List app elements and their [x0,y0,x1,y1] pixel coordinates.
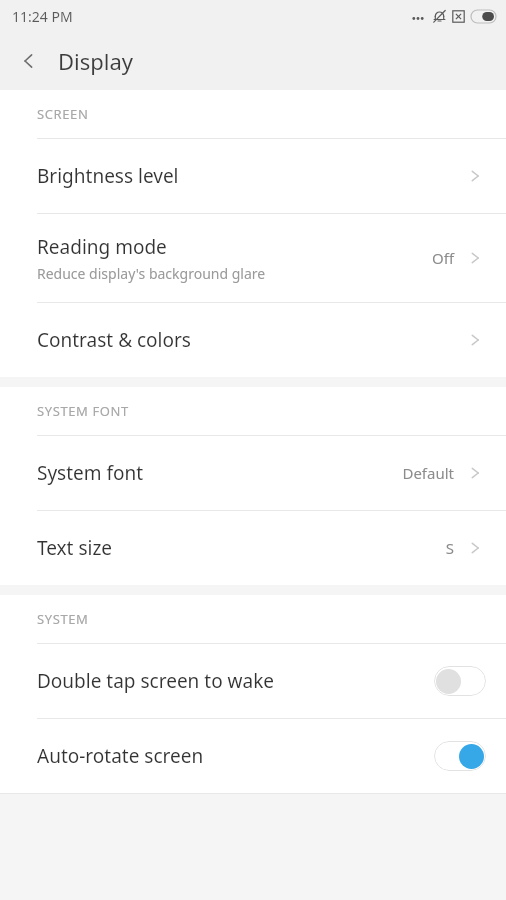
staticText: Text size [37,535,113,561]
staticText: System font [37,460,144,486]
other: Off [434,666,486,696]
staticText: S [445,538,454,558]
staticText: Default [402,463,454,483]
button[interactable]: Auto-rotate screen [0,719,506,793]
button[interactable]: Back [0,38,150,84]
other: Back [18,50,40,72]
button[interactable]: System font [0,436,506,510]
staticText: Off [431,248,454,268]
staticText: SCREEN [37,105,89,123]
button[interactable]: Reading mode [0,214,506,302]
staticText: SYSTEM [37,610,89,628]
button[interactable]: Contrast & colors [0,303,506,377]
button[interactable]: Double tap screen to wake [0,644,506,718]
staticText: Auto-rotate screen [37,743,434,769]
staticText: Reading mode [37,234,167,260]
staticText: SYSTEM FONT [37,402,129,420]
staticText: 11:24 PM [12,7,73,26]
staticText: Brightness level [37,163,179,189]
staticText: Reduce display's background glare [37,264,266,283]
button[interactable]: Brightness level [0,139,506,213]
staticText: Double tap screen to wake [37,668,434,694]
button[interactable]: Text size [0,511,506,585]
other: On [434,741,486,771]
staticText: Display [58,46,134,76]
staticText: Contrast & colors [37,327,191,353]
